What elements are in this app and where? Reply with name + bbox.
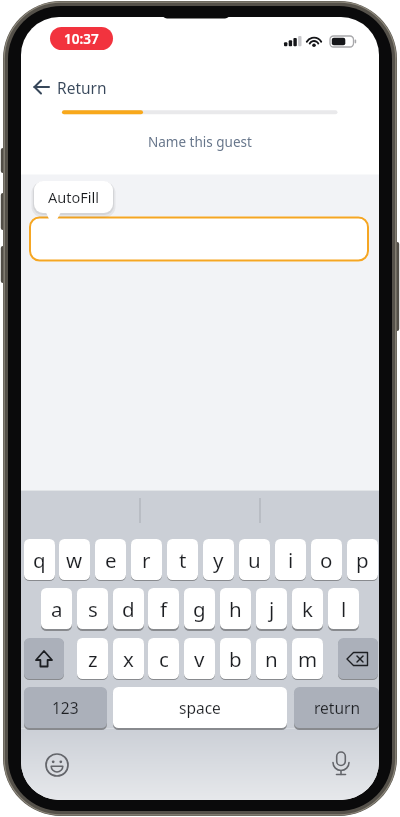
staticText: n: [265, 645, 278, 673]
button[interactable]: j: [256, 588, 287, 629]
button[interactable]: k: [292, 588, 323, 629]
button[interactable]: [43, 751, 71, 779]
staticText: v: [194, 645, 205, 673]
staticText: o: [320, 546, 333, 574]
staticText: i: [288, 546, 294, 574]
staticText: space: [179, 697, 221, 718]
button[interactable]: [338, 638, 378, 679]
staticText: g: [193, 595, 206, 623]
button[interactable]: r: [131, 539, 162, 580]
staticText: f: [160, 595, 168, 623]
button[interactable]: space: [113, 687, 287, 728]
staticText: y: [213, 546, 224, 574]
button[interactable]: v: [184, 638, 215, 679]
staticText: p: [356, 546, 369, 574]
button[interactable]: h: [220, 588, 251, 629]
staticText: r: [142, 546, 151, 574]
staticText: a: [51, 595, 63, 623]
staticText: b: [229, 645, 242, 673]
staticText: c: [159, 645, 169, 673]
button[interactable]: 123: [24, 687, 107, 728]
button[interactable]: [29, 217, 369, 262]
button[interactable]: x: [113, 638, 144, 679]
button[interactable]: l: [328, 588, 359, 629]
button[interactable]: n: [256, 638, 287, 679]
button[interactable]: c: [148, 638, 179, 679]
staticText: Name this guest: [148, 133, 252, 151]
staticText: u: [248, 546, 261, 574]
button[interactable]: Return: [27, 75, 127, 100]
button[interactable]: w: [59, 539, 90, 580]
staticText: t: [179, 546, 187, 574]
staticText: m: [298, 645, 318, 673]
button[interactable]: p: [347, 539, 378, 580]
staticText: return: [314, 697, 360, 718]
button[interactable]: t: [167, 539, 198, 580]
staticText: d: [122, 595, 135, 623]
button[interactable]: b: [220, 638, 251, 679]
button[interactable]: AutoFill: [34, 181, 113, 213]
staticText: 123: [52, 697, 79, 718]
button[interactable]: z: [77, 638, 108, 679]
staticText: 10:37: [64, 30, 99, 48]
button[interactable]: e: [95, 539, 126, 580]
button[interactable]: return: [294, 687, 379, 728]
button[interactable]: s: [77, 588, 108, 629]
button[interactable]: f: [148, 588, 179, 629]
staticText: l: [341, 595, 347, 623]
staticText: k: [302, 595, 313, 623]
button[interactable]: [24, 638, 64, 679]
staticText: z: [88, 645, 98, 673]
button[interactable]: o: [311, 539, 342, 580]
staticText: h: [229, 595, 242, 623]
staticText: e: [105, 546, 117, 574]
button[interactable]: a: [41, 588, 72, 629]
button[interactable]: d: [113, 588, 144, 629]
button[interactable]: q: [24, 539, 55, 580]
staticText: w: [66, 546, 83, 574]
button[interactable]: u: [239, 539, 270, 580]
staticText: s: [88, 595, 98, 623]
staticText: x: [123, 645, 134, 673]
staticText: Return: [57, 77, 107, 98]
button[interactable]: [327, 750, 355, 778]
staticText: j: [269, 595, 275, 623]
button[interactable]: m: [292, 638, 323, 679]
button[interactable]: i: [275, 539, 306, 580]
button[interactable]: y: [203, 539, 234, 580]
staticText: AutoFill: [48, 187, 99, 207]
staticText: q: [33, 546, 46, 574]
button[interactable]: g: [184, 588, 215, 629]
